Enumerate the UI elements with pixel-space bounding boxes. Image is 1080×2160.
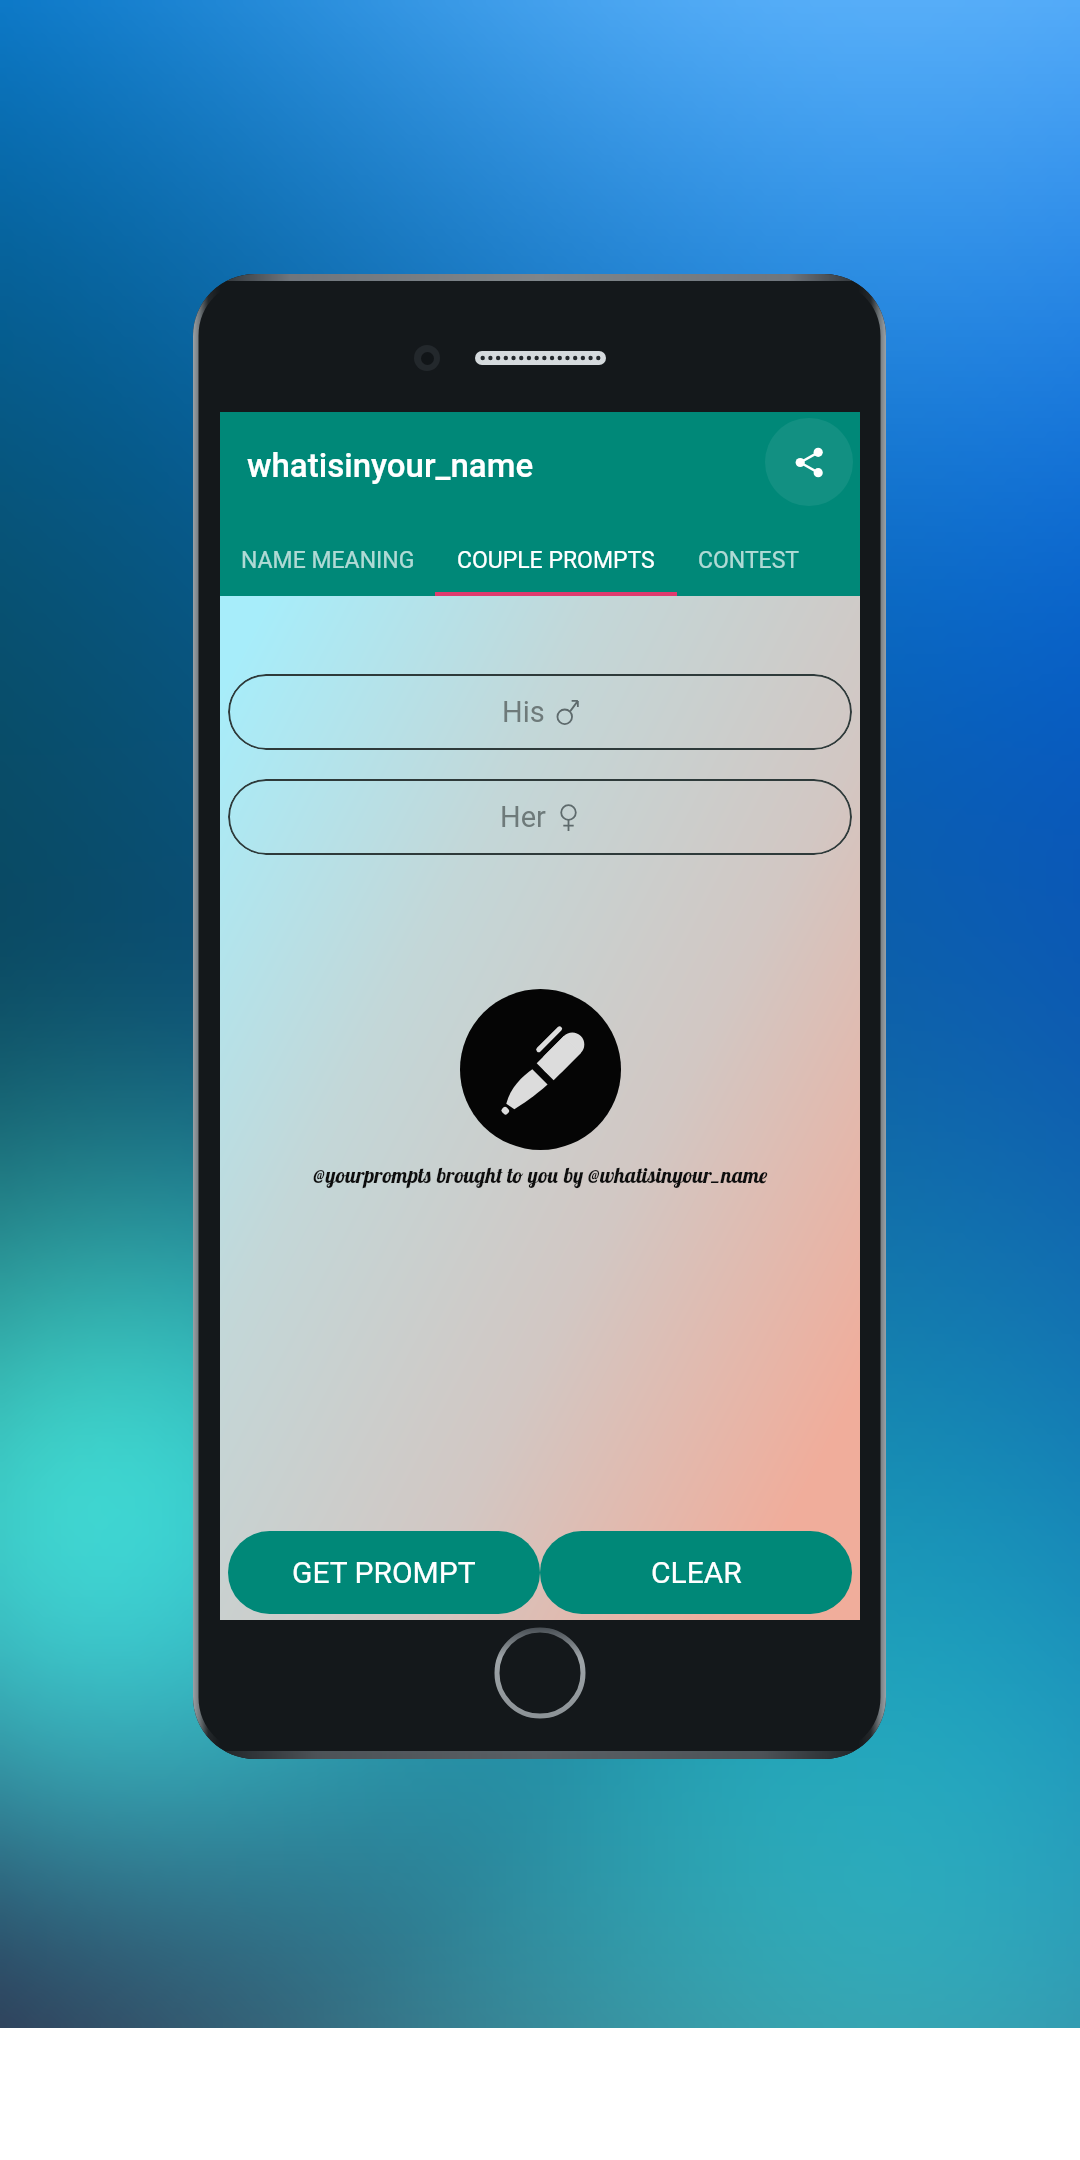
- staticText: CLEAR: [651, 1555, 742, 1590]
- staticText: COUPLE PROMPTS: [457, 547, 655, 574]
- staticText: @yourprompts brought to you by @whatisin…: [313, 1161, 768, 1188]
- button[interactable]: GET PROMPT: [228, 1531, 540, 1614]
- staticText: CONTEST: [698, 547, 800, 574]
- staticText: Her: [500, 800, 546, 834]
- staticText: whatisinyour_name: [247, 446, 534, 485]
- button[interactable]: Share: [765, 418, 853, 506]
- button[interactable]: NAME MEANING: [220, 524, 435, 596]
- staticText: NAME MEANING: [241, 547, 415, 574]
- staticText: GET PROMPT: [292, 1555, 476, 1590]
- button[interactable]: His: [228, 674, 852, 750]
- staticText: His: [502, 695, 545, 729]
- button[interactable]: COUPLE PROMPTS: [435, 524, 677, 596]
- button[interactable]: CLEAR: [540, 1531, 852, 1614]
- button[interactable]: CONTEST: [677, 524, 820, 596]
- button[interactable]: Her: [228, 779, 852, 855]
